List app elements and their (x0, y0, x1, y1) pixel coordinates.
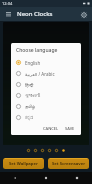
staticText: ગુજરાતી (25, 93, 41, 98)
button[interactable]: Page 6 (62, 149, 65, 152)
button[interactable]: Page 1 (27, 149, 30, 152)
button[interactable]: Home (30, 172, 61, 184)
button[interactable]: Recent apps (61, 172, 92, 184)
button[interactable]: CANCEL (42, 124, 60, 133)
button[interactable]: Page 5 (55, 149, 58, 152)
button[interactable]: Set Screensaver (48, 158, 89, 169)
button[interactable]: ગુજરાતી (16, 90, 76, 101)
button[interactable]: Settings (79, 10, 88, 19)
button[interactable]: ಕನ್ನಡ (16, 112, 76, 123)
staticText: العربية / Arabic (25, 71, 55, 77)
staticText: ಕನ್ನಡ (25, 115, 34, 120)
staticText: SAVE (65, 126, 75, 131)
staticText: CANCEL (43, 126, 59, 131)
staticText: 12:04 (2, 1, 13, 6)
staticText: Set Screensaver (52, 161, 86, 167)
staticText: हिन्दी (25, 82, 34, 88)
button[interactable]: Page 3 (41, 149, 44, 152)
button[interactable]: Back (0, 172, 30, 184)
staticText: English (25, 60, 41, 66)
staticText: தமிழ் (25, 104, 36, 109)
button[interactable]: SAVE (64, 124, 76, 133)
button[interactable]: Page 2 (34, 149, 37, 152)
staticText: Choose language (16, 47, 58, 54)
button[interactable]: Open navigation menu (4, 10, 13, 19)
button[interactable]: العربية / Arabic (16, 68, 76, 79)
button[interactable]: Set Wallpaper (3, 158, 44, 169)
button[interactable]: हिन्दी (16, 79, 76, 90)
button[interactable]: தமிழ் (16, 101, 76, 112)
staticText: Set Wallpaper (9, 161, 38, 167)
button[interactable]: English (16, 57, 76, 68)
staticText: Neon Clocks (17, 10, 79, 18)
button[interactable]: Page 4 (48, 149, 51, 152)
